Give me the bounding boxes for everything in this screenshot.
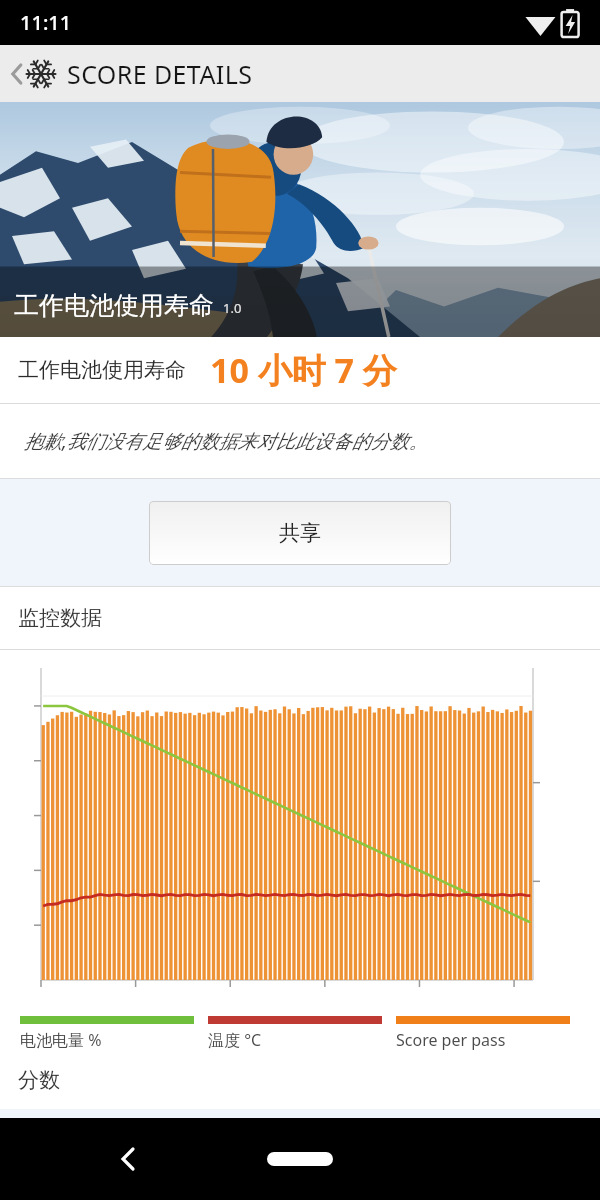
staticText: 分数: [18, 1067, 60, 1093]
button[interactable]: Back: [0, 45, 600, 102]
staticText: 10 小时 7 分: [210, 347, 397, 393]
staticText: 电池电量 %: [20, 1029, 102, 1051]
staticText: 工作电池使用寿命: [18, 357, 186, 383]
staticText: 监控数据: [18, 605, 102, 631]
staticText: Score per pass: [396, 1029, 506, 1051]
button[interactable]: 共享: [149, 501, 451, 565]
staticText: 11:11: [20, 9, 72, 36]
staticText: 工作电池使用寿命: [14, 290, 214, 321]
staticText: 温度 °C: [208, 1029, 262, 1051]
button[interactable]: Home: [267, 1152, 333, 1166]
staticText: SCORE DETAILS: [67, 57, 253, 91]
staticText: 抱歉,我们没有足够的数据来对比此设备的分数。: [24, 428, 428, 454]
button[interactable]: Back: [105, 1136, 151, 1182]
staticText: 共享: [279, 520, 321, 546]
staticText: 1.0: [223, 299, 242, 317]
